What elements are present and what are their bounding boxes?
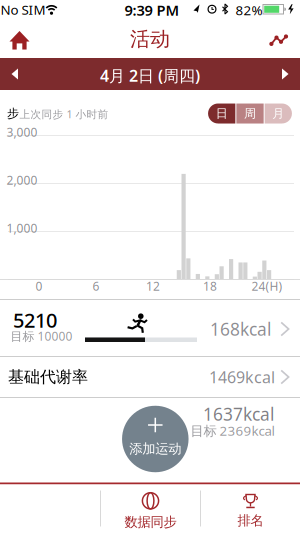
button[interactable]: 数据同步 [101,487,200,533]
staticText: 1,000 [6,220,37,236]
staticText: No SIM [0,1,45,18]
button[interactable]: 前一天 [0,58,36,90]
staticText: 基础代谢率 [8,367,88,387]
staticText: 步 [7,106,19,121]
staticText: 数据同步 [124,514,176,530]
staticText: 3,000 [6,124,37,140]
button[interactable]: 周 [236,103,264,123]
staticText: 2,000 [6,172,37,188]
staticText: 月 [272,106,284,121]
staticText: 日 [216,106,228,121]
staticText: 18 [203,278,217,294]
staticText: 周 [244,106,256,121]
staticText: 目标 10000 [10,328,72,344]
staticText: 1469kcal [209,366,275,388]
staticText: 9:39 PM [124,0,179,20]
staticText: 6 [92,278,99,294]
button[interactable]: 基础代谢率 [0,357,300,397]
button[interactable]: 后一天 [264,58,300,90]
button[interactable]: 月 [265,103,292,123]
staticText: 12 [146,278,160,294]
staticText: 82% [235,1,262,19]
staticText: 5210 [13,307,57,333]
staticText: 排名 [237,512,263,529]
staticText: 上次同步 1 小时前 [19,107,108,121]
button[interactable]: 排名 [201,487,300,533]
staticText: 24(H) [251,278,282,294]
staticText: 目标 2369kcal [190,422,274,439]
staticText: 168kcal [210,317,271,340]
button[interactable]: 日 [208,103,235,123]
button[interactable]: 趋势 [262,20,296,58]
staticText: 4月 2日 (周四) [100,65,200,86]
staticText: 添加运动 [129,441,181,457]
button[interactable]: 添加运动 [122,406,189,472]
staticText: 0 [35,278,42,294]
button[interactable]: 5210 [0,300,300,356]
staticText: 活动 [130,27,170,51]
staticText: 1637kcal [203,402,274,425]
button[interactable]: 主页 [0,20,40,58]
